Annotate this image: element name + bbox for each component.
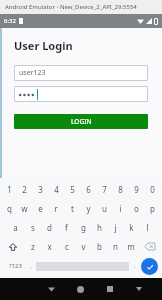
- staticText: i: [119, 203, 122, 214]
- button[interactable]: LOGIN: [14, 114, 148, 129]
- staticText: f: [65, 222, 68, 233]
- staticText: 6: [86, 184, 91, 195]
- button[interactable]: 9: [128, 180, 144, 199]
- button[interactable]: k: [123, 218, 139, 237]
- button[interactable]: g: [75, 218, 91, 237]
- button[interactable]: a: [7, 218, 24, 237]
- button[interactable]: 1: [2, 180, 17, 199]
- button[interactable]: Emoji: [26, 256, 36, 276]
- button[interactable]: 0: [144, 180, 160, 199]
- staticText: o: [134, 203, 139, 214]
- staticText: v: [81, 241, 86, 252]
- staticText: d: [47, 222, 52, 233]
- button[interactable]: Back: [36, 278, 66, 300]
- staticText: 3: [38, 184, 43, 195]
- staticText: 7: [102, 184, 107, 195]
- staticText: p: [150, 203, 155, 214]
- button[interactable]: 2: [17, 180, 32, 199]
- staticText: m: [127, 241, 135, 252]
- staticText: 8: [118, 184, 123, 195]
- staticText: h: [97, 222, 102, 233]
- button[interactable]: 8: [112, 180, 128, 199]
- button[interactable]: Backspace: [139, 237, 160, 256]
- staticText: ,: [30, 262, 32, 270]
- button[interactable]: e: [32, 199, 48, 218]
- staticText: ?123: [9, 262, 22, 270]
- button[interactable]: s: [24, 218, 41, 237]
- staticText: l: [146, 222, 149, 233]
- staticText: k: [129, 222, 134, 233]
- staticText: a: [13, 222, 18, 233]
- button[interactable]: y: [80, 199, 96, 218]
- button[interactable]: 4: [48, 180, 64, 199]
- staticText: 2: [22, 184, 27, 195]
- staticText: s: [31, 222, 35, 233]
- button[interactable]: m: [123, 237, 139, 256]
- button[interactable]: p: [144, 199, 160, 218]
- staticText: y: [86, 203, 91, 214]
- staticText: 4: [54, 184, 59, 195]
- button[interactable]: b: [91, 237, 107, 256]
- staticText: t: [71, 203, 74, 214]
- button[interactable]: z: [24, 237, 41, 256]
- button[interactable]: t: [64, 199, 80, 218]
- staticText: LOGIN: [71, 117, 92, 126]
- staticText: q: [7, 203, 12, 214]
- staticText: .: [134, 262, 136, 270]
- button[interactable]: 3: [32, 180, 48, 199]
- staticText: x: [47, 241, 52, 252]
- staticText: 1: [7, 184, 12, 195]
- button[interactable]: Enter: [141, 258, 158, 275]
- button[interactable]: Shift: [2, 237, 24, 256]
- button[interactable]: j: [107, 218, 123, 237]
- button[interactable]: d: [41, 218, 58, 237]
- button[interactable]: i: [112, 199, 128, 218]
- staticText: w: [21, 203, 28, 214]
- button[interactable]: Hide keyboard: [124, 278, 153, 300]
- button[interactable]: [14, 86, 148, 102]
- button[interactable]: Recent apps: [95, 278, 124, 300]
- button[interactable]: 5: [64, 180, 80, 199]
- button[interactable]: v: [75, 237, 91, 256]
- staticText: User Login: [14, 38, 73, 53]
- button[interactable]: w: [17, 199, 32, 218]
- staticText: Android Emulator - New_Device_2_API_29:5…: [5, 3, 137, 11]
- staticText: 5: [70, 184, 75, 195]
- staticText: 0: [150, 184, 155, 195]
- button[interactable]: c: [58, 237, 75, 256]
- button[interactable]: 7: [96, 180, 112, 199]
- button[interactable]: l: [139, 218, 155, 237]
- button[interactable]: ?123: [4, 256, 26, 276]
- button[interactable]: f: [58, 218, 75, 237]
- staticText: user123: [19, 68, 46, 78]
- button[interactable]: user123: [14, 65, 148, 81]
- staticText: z: [31, 241, 35, 252]
- staticText: b: [97, 241, 102, 252]
- button[interactable]: Home: [66, 278, 95, 300]
- button[interactable]: q: [2, 199, 17, 218]
- button[interactable]: o: [128, 199, 144, 218]
- button[interactable]: n: [107, 237, 123, 256]
- staticText: n: [113, 241, 118, 252]
- staticText: u: [102, 203, 107, 214]
- staticText: g: [81, 222, 86, 233]
- staticText: c: [65, 241, 69, 252]
- staticText: j: [114, 222, 117, 233]
- staticText: 9: [134, 184, 139, 195]
- button[interactable]: h: [91, 218, 107, 237]
- staticText: r: [54, 203, 58, 214]
- staticText: 6:32: [4, 17, 16, 25]
- button[interactable]: 6: [80, 180, 96, 199]
- staticText: e: [38, 203, 43, 214]
- button[interactable]: r: [48, 199, 64, 218]
- button[interactable]: u: [96, 199, 112, 218]
- button[interactable]: x: [41, 237, 58, 256]
